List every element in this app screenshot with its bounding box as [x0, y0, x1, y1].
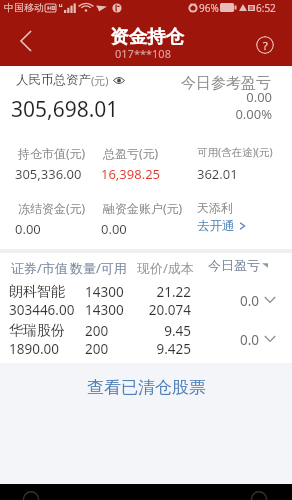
button[interactable]: 华瑞股份 [0, 322, 292, 360]
staticText: 303446.00 [9, 301, 75, 319]
staticText: 21.22 [131, 283, 191, 301]
staticText: 14300 [85, 301, 124, 319]
staticText: 305,698.01 [11, 95, 119, 124]
staticText: 天添利 [197, 200, 233, 215]
staticText: 0.00 [202, 88, 272, 106]
staticText: 冻结资金(元) [18, 200, 86, 216]
staticText: 9.425 [131, 340, 191, 358]
staticText: 6:52 [256, 1, 276, 15]
button[interactable]: 去开通 [197, 218, 246, 234]
staticText: 200 [85, 322, 109, 340]
button[interactable]: Back [6, 24, 46, 60]
staticText: 人民币总资产 [16, 72, 91, 88]
staticText: 305,336.00 [15, 165, 82, 183]
staticText: 0.00 [101, 220, 127, 238]
staticText: 证券/市值 [11, 259, 68, 277]
staticText: 20.074 [131, 301, 191, 319]
staticText: 200 [85, 340, 109, 358]
staticText: 现价/成本 [137, 259, 194, 277]
staticText: 1890.00 [9, 340, 59, 358]
staticText: 华瑞股份 [9, 322, 65, 340]
button[interactable]: Recents [248, 484, 270, 500]
staticText: 16,398.25 [101, 165, 161, 183]
staticText: 今日参考盈亏 [181, 74, 271, 93]
button[interactable]: Help [256, 36, 274, 54]
staticText: 96% [199, 1, 219, 15]
button[interactable]: 朗科智能 [0, 283, 292, 321]
staticText: 9.45 [131, 322, 191, 340]
staticText: 朗科智能 [9, 283, 65, 301]
staticText: 0.00% [202, 105, 272, 123]
staticText: 0.0 [209, 331, 259, 349]
staticText: 362.01 [197, 165, 238, 183]
staticText: 持仓市值(元) [18, 145, 86, 161]
staticText: 去开通 [197, 218, 235, 234]
button[interactable]: 查看已清仓股票 [0, 373, 292, 401]
staticText: 融资金账户(元) [103, 200, 183, 216]
staticText: ? [263, 38, 268, 53]
button[interactable]: 今日盈亏 [208, 257, 268, 273]
staticText: 可用(含在途)(元) [197, 145, 273, 159]
staticText: 14300 [85, 283, 124, 301]
staticText: 总盈亏(元) [103, 145, 159, 161]
staticText: 查看已清仓股票 [87, 377, 206, 398]
staticText: 数量/可用 [70, 259, 127, 277]
staticText: 资金持仓 [110, 25, 184, 48]
staticText: 0.0 [209, 292, 259, 310]
staticText: 中国移动 [4, 1, 44, 14]
staticText: (元) [91, 73, 109, 88]
staticText: 017***108 [115, 46, 171, 61]
staticText: 0.00 [15, 220, 41, 238]
staticText: 今日盈亏 [208, 257, 260, 273]
button[interactable]: Back [20, 484, 42, 500]
